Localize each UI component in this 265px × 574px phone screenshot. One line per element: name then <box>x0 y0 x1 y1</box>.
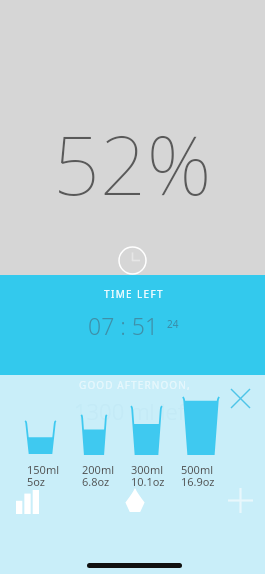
staticText: 1300 ml left <box>74 396 192 426</box>
button[interactable]: Close <box>227 385 254 412</box>
staticText: 150ml <box>27 462 59 477</box>
button[interactable]: Statistics <box>10 485 44 519</box>
staticText: 5oz <box>27 474 46 489</box>
staticText: 52% <box>53 107 212 219</box>
staticText: 24 <box>167 317 179 331</box>
staticText: 07 : 51 <box>88 310 159 341</box>
staticText: 16.9oz <box>181 474 215 489</box>
staticText: 300ml <box>131 462 163 477</box>
staticText: TIME LEFT <box>104 287 164 301</box>
staticText: 10.1oz <box>131 474 165 489</box>
button[interactable]: Add <box>224 484 257 517</box>
staticText: 200ml <box>82 462 114 477</box>
staticText: 6.8oz <box>82 474 110 489</box>
staticText: 500ml <box>181 462 213 477</box>
button[interactable]: Add water <box>118 483 151 516</box>
staticText: GOOD AFTERNOON, <box>79 378 191 392</box>
